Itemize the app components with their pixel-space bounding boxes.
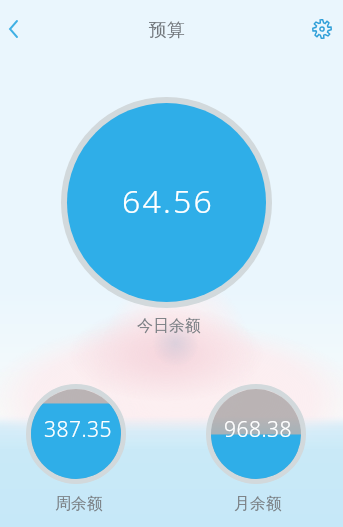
button[interactable]: 387.35 [26, 384, 126, 484]
staticText: 64.56 [122, 179, 214, 223]
staticText: 387.35 [44, 415, 113, 444]
staticText: 周余额 [55, 494, 103, 514]
button[interactable]: Back [0, 0, 46, 57]
staticText: 预算 [149, 19, 185, 42]
staticText: 968.38 [224, 415, 293, 444]
button[interactable]: 64.56 [61, 97, 272, 308]
button[interactable]: Settings [297, 0, 343, 57]
staticText: 月余额 [234, 494, 282, 514]
button[interactable]: 968.38 [206, 384, 306, 484]
staticText: 今日余额 [137, 316, 201, 336]
